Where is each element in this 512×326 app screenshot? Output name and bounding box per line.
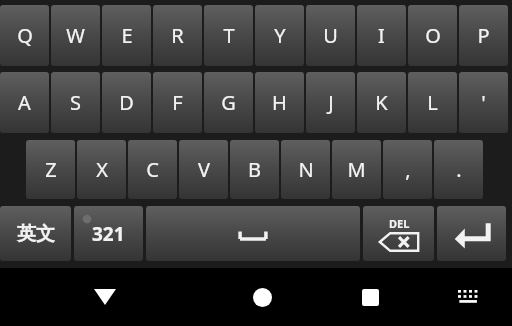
staticText: E [121, 22, 133, 49]
button[interactable]: Home [210, 268, 315, 326]
button[interactable]: Recent apps [315, 268, 425, 326]
button[interactable]: B [230, 140, 279, 199]
button[interactable]: O [408, 5, 457, 66]
staticText: A [18, 89, 31, 116]
staticText: I [378, 22, 385, 49]
staticText: DEL [389, 216, 410, 231]
button[interactable]: G [204, 72, 253, 133]
button[interactable]: Delete [363, 206, 434, 261]
button[interactable]: H [255, 72, 304, 133]
staticText: Q [17, 22, 33, 49]
staticText: B [248, 156, 261, 183]
button[interactable]: , [383, 140, 432, 199]
button[interactable]: Q [0, 5, 49, 66]
button[interactable]: Z [26, 140, 75, 199]
button[interactable]: I [357, 5, 406, 66]
staticText: C [146, 156, 159, 183]
button[interactable]: ' [459, 72, 508, 133]
button[interactable]: P [459, 5, 508, 66]
button[interactable]: . [434, 140, 483, 199]
button[interactable]: E [102, 5, 151, 66]
staticText: 321 [92, 221, 125, 247]
button[interactable]: 英文 [0, 206, 71, 261]
button[interactable]: M [332, 140, 381, 199]
button[interactable]: A [0, 72, 49, 133]
staticText: U [323, 22, 338, 49]
button[interactable]: Y [255, 5, 304, 66]
staticText: X [96, 156, 108, 183]
staticText: Y [274, 22, 286, 49]
staticText: D [119, 89, 134, 116]
staticText: O [425, 22, 441, 49]
staticText: W [66, 22, 85, 49]
button[interactable]: S [51, 72, 100, 133]
button[interactable]: T [204, 5, 253, 66]
staticText: ' [481, 89, 486, 116]
button[interactable]: W [51, 5, 100, 66]
button[interactable]: Enter [437, 206, 506, 261]
button[interactable]: Switch keyboard [425, 268, 512, 326]
button[interactable]: Space [146, 206, 360, 261]
staticText: T [223, 22, 235, 49]
staticText: H [272, 89, 287, 116]
staticText: L [427, 89, 438, 116]
button[interactable]: Hide keyboard [0, 268, 210, 326]
staticText: 英文 [17, 222, 55, 246]
staticText: V [198, 156, 210, 183]
staticText: G [221, 89, 236, 116]
button[interactable]: F [153, 72, 202, 133]
button[interactable]: U [306, 5, 355, 66]
button[interactable]: X [77, 140, 126, 199]
button[interactable]: C [128, 140, 177, 199]
button[interactable]: 321 [74, 206, 143, 261]
button[interactable]: K [357, 72, 406, 133]
button[interactable]: R [153, 5, 202, 66]
staticText: S [70, 89, 81, 116]
button[interactable]: D [102, 72, 151, 133]
staticText: K [375, 89, 388, 116]
staticText: J [328, 89, 334, 116]
staticText: N [298, 156, 314, 183]
staticText: Z [45, 156, 57, 183]
button[interactable]: L [408, 72, 457, 133]
staticText: M [347, 156, 366, 183]
staticText: . [456, 156, 462, 183]
button[interactable]: V [179, 140, 228, 199]
staticText: P [477, 22, 490, 49]
staticText: , [405, 156, 411, 183]
staticText: F [172, 89, 183, 116]
staticText: R [171, 22, 184, 49]
button[interactable]: N [281, 140, 330, 199]
button[interactable]: J [306, 72, 355, 133]
